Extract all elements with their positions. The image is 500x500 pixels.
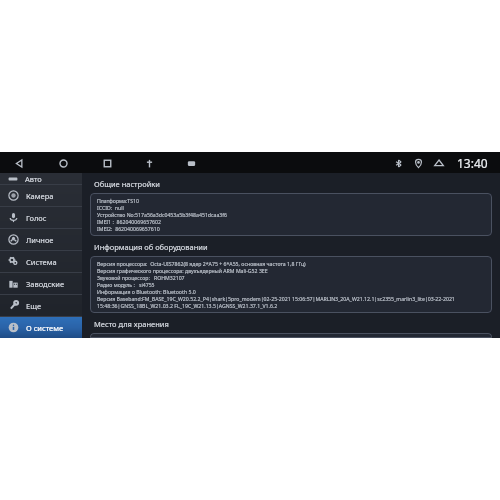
button[interactable]: Back [10, 154, 28, 172]
staticText: IMEI1 : 862040069657602 [97, 218, 162, 225]
button[interactable]: О системе [0, 317, 82, 338]
staticText: Версия Baseband:FM_BASE_19C_W20.52.2_P4|… [97, 295, 455, 302]
staticText: IMEI2: 862040069657610 [97, 225, 160, 232]
button[interactable]: Авто [0, 173, 82, 184]
staticText: Заводские [26, 279, 65, 289]
button[interactable]: Голос [0, 207, 82, 228]
staticText: Еще [26, 301, 42, 311]
button[interactable]: Камера [0, 185, 82, 206]
staticText: Версия процессора: Octa-UIS7862(8 ядер 2… [97, 260, 306, 267]
button[interactable] [90, 333, 492, 338]
staticText: Камера [26, 191, 54, 201]
staticText: Устройство No:517a56a3dc0453a5b3f48a451d… [97, 211, 228, 218]
staticText: Информация о Bluetooth: Bluetooth 5.0 [97, 288, 196, 295]
staticText: О системе [26, 323, 64, 333]
staticText: 13:40 [457, 155, 488, 171]
staticText: Версия графического процессора: двухъяде… [97, 267, 268, 274]
staticText: Голос [26, 213, 47, 223]
button[interactable]: Еще [0, 295, 82, 316]
button[interactable]: Screenshot [182, 154, 200, 172]
button[interactable]: Версия процессора: Octa-UIS7862(8 ядер 2… [90, 256, 492, 313]
staticText: 15:48:36|GNSS_18BL_W21.03.2 FL_19C_W21.1… [97, 302, 278, 309]
button[interactable]: Система [0, 251, 82, 272]
button[interactable]: Home [54, 154, 72, 172]
staticText: ICCID: null [97, 204, 124, 211]
button[interactable]: Recents [98, 154, 116, 172]
staticText: Информация об оборудовании [94, 242, 208, 252]
staticText: Общие настройки [94, 179, 160, 189]
staticText: Личное [26, 235, 54, 245]
staticText: Платформа:TS10 [97, 197, 140, 204]
button[interactable]: Заводские [0, 273, 82, 294]
staticText: Авто [25, 174, 42, 184]
staticText: Место для хранения [94, 319, 169, 329]
staticText: Звуковой процессор: ROHM32107 [97, 274, 185, 281]
button[interactable]: Личное [0, 229, 82, 250]
button[interactable]: Navigation [140, 154, 158, 172]
staticText: Радио модуль : si4755 [97, 281, 155, 288]
staticText: Система [26, 257, 57, 267]
button[interactable]: Платформа:TS10 [90, 193, 492, 236]
